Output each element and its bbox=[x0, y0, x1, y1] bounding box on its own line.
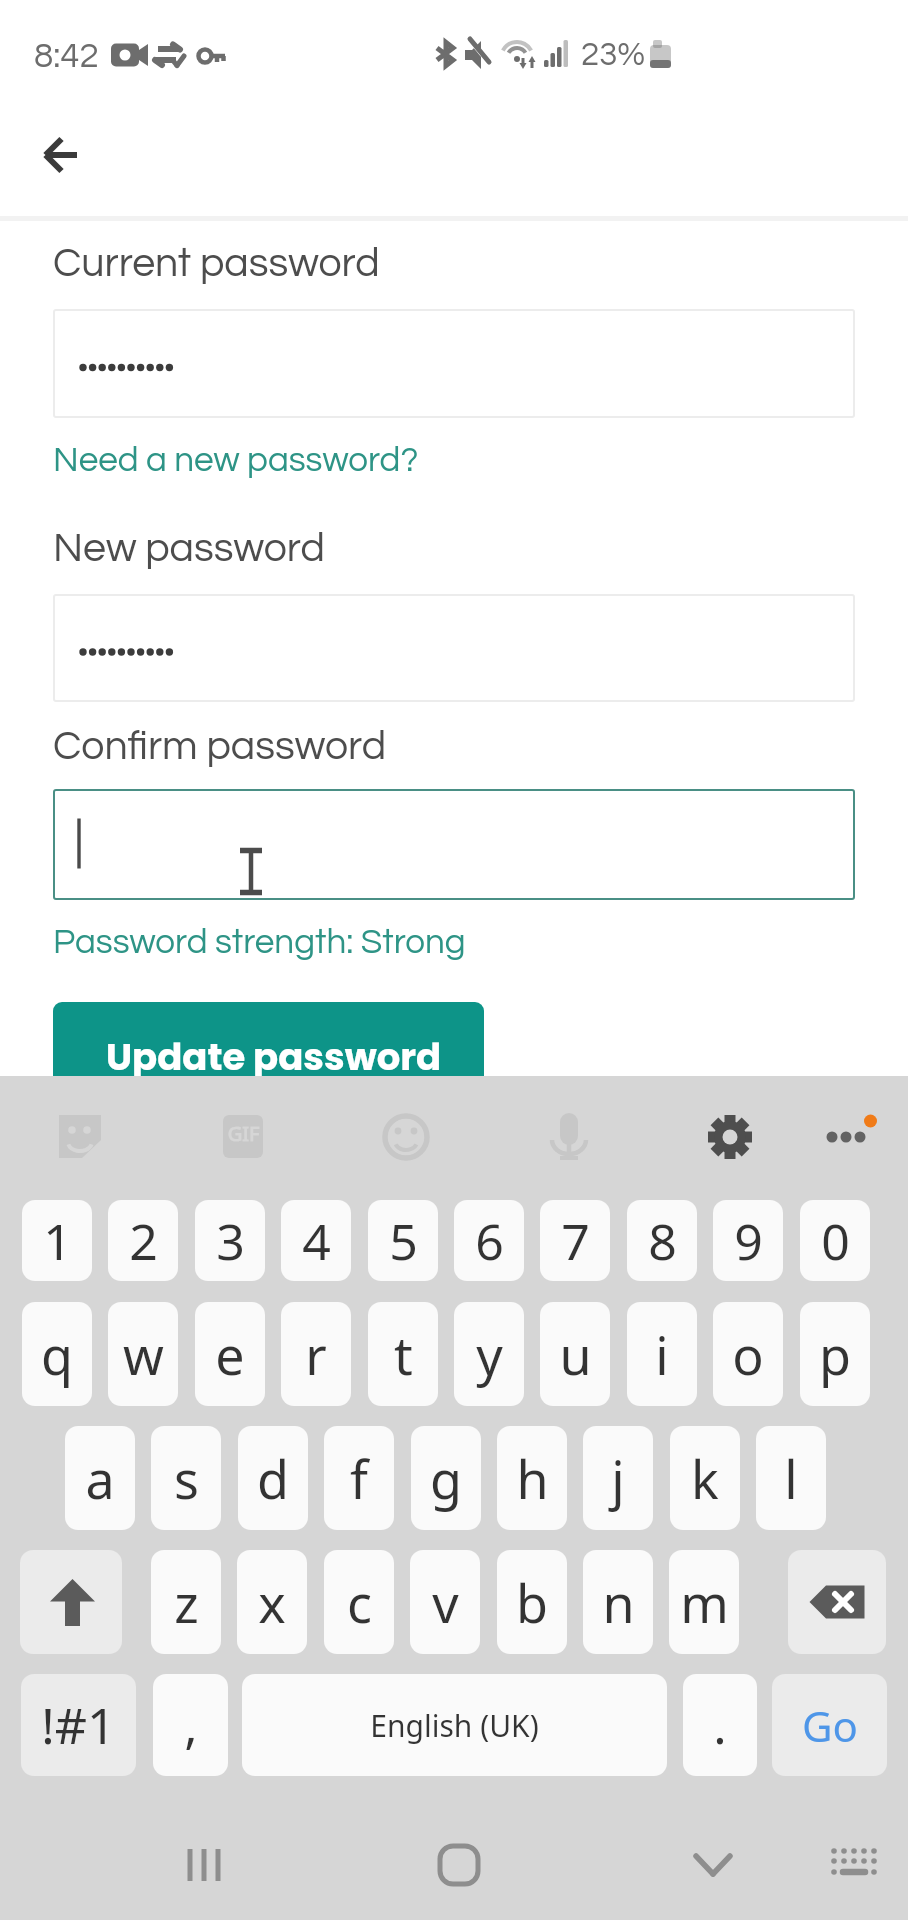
button[interactable]: 9 bbox=[713, 1200, 783, 1281]
staticText: w bbox=[123, 1319, 164, 1390]
button[interactable]: p bbox=[800, 1302, 870, 1406]
button[interactable]: a bbox=[65, 1426, 135, 1530]
button[interactable]: Hide keyboard bbox=[658, 1800, 768, 1920]
button[interactable]: Go bbox=[772, 1674, 887, 1776]
staticText: d bbox=[257, 1443, 289, 1514]
button[interactable]: w bbox=[108, 1302, 178, 1406]
button[interactable]: GIF bbox=[223, 1115, 264, 1159]
button[interactable]: n bbox=[583, 1550, 653, 1654]
staticText: b bbox=[516, 1567, 548, 1638]
staticText: k bbox=[691, 1443, 719, 1514]
button[interactable]: t bbox=[368, 1302, 438, 1406]
button[interactable]: 6 bbox=[454, 1200, 524, 1281]
staticText: c bbox=[347, 1567, 372, 1638]
button[interactable]: r bbox=[281, 1302, 351, 1406]
staticText: Password strength: Strong bbox=[53, 924, 466, 960]
staticText: t bbox=[394, 1319, 413, 1390]
button[interactable]: g bbox=[411, 1426, 481, 1530]
button[interactable]: y bbox=[454, 1302, 524, 1406]
staticText: f bbox=[350, 1443, 368, 1514]
staticText: g bbox=[430, 1443, 462, 1514]
button[interactable]: q bbox=[22, 1302, 92, 1406]
staticText: 9 bbox=[734, 1207, 763, 1275]
staticText: i bbox=[655, 1319, 669, 1390]
button[interactable]: z bbox=[151, 1550, 221, 1654]
button[interactable]: 3 bbox=[195, 1200, 265, 1281]
button[interactable]: 0 bbox=[800, 1200, 870, 1281]
staticText: 2 bbox=[129, 1207, 158, 1275]
staticText: . bbox=[713, 1691, 727, 1759]
staticText: Confirm password bbox=[53, 725, 387, 767]
button[interactable]: h bbox=[497, 1426, 567, 1530]
button[interactable]: m bbox=[669, 1550, 739, 1654]
button[interactable]: d bbox=[238, 1426, 308, 1530]
staticText: a bbox=[85, 1443, 115, 1514]
staticText: 3 bbox=[216, 1207, 245, 1275]
button[interactable]: Recents bbox=[149, 1800, 259, 1920]
button[interactable]: 2 bbox=[108, 1200, 178, 1281]
staticText: , bbox=[184, 1691, 198, 1759]
button[interactable]: Shift bbox=[20, 1550, 122, 1654]
button[interactable]: f bbox=[324, 1426, 394, 1530]
button[interactable]: Stickers bbox=[58, 1115, 102, 1159]
button[interactable]: 5 bbox=[368, 1200, 438, 1281]
button[interactable]: Change keyboard bbox=[799, 1800, 908, 1920]
staticText: Current password bbox=[53, 242, 380, 284]
button[interactable]: c bbox=[324, 1550, 394, 1654]
button[interactable]: English (UK) bbox=[242, 1674, 667, 1776]
staticText: English (UK) bbox=[370, 1705, 539, 1746]
button[interactable]: Keyboard settings bbox=[708, 1115, 752, 1159]
staticText: u bbox=[559, 1319, 592, 1390]
staticText: Go bbox=[802, 1697, 858, 1754]
button[interactable]: More options bbox=[826, 1115, 876, 1159]
staticText: r bbox=[305, 1319, 327, 1390]
button[interactable]: Home bbox=[404, 1800, 514, 1920]
staticText: x bbox=[258, 1567, 286, 1638]
staticText: 4 bbox=[302, 1207, 331, 1275]
button[interactable]: Back bbox=[20, 114, 102, 196]
button[interactable]: s bbox=[151, 1426, 221, 1530]
staticText: o bbox=[732, 1319, 764, 1390]
staticText: 6 bbox=[475, 1207, 504, 1275]
button[interactable]: . bbox=[683, 1674, 757, 1776]
button[interactable]: i bbox=[627, 1302, 697, 1406]
staticText: 0 bbox=[821, 1207, 850, 1275]
button[interactable]: l bbox=[756, 1426, 826, 1530]
staticText: h bbox=[516, 1443, 549, 1514]
staticText: p bbox=[819, 1319, 851, 1390]
button[interactable]: x bbox=[237, 1550, 307, 1654]
button[interactable]: 7 bbox=[540, 1200, 610, 1281]
button[interactable]: o bbox=[713, 1302, 783, 1406]
button[interactable]: Backspace bbox=[788, 1550, 886, 1654]
button[interactable]: , bbox=[153, 1674, 228, 1776]
button[interactable]: Voice input bbox=[550, 1113, 588, 1161]
button[interactable] bbox=[53, 594, 855, 702]
staticText: 1 bbox=[43, 1207, 72, 1275]
staticText: n bbox=[602, 1567, 635, 1638]
button[interactable]: v bbox=[410, 1550, 480, 1654]
button[interactable]: k bbox=[670, 1426, 740, 1530]
staticText: Update password bbox=[106, 1031, 442, 1083]
staticText: y bbox=[476, 1319, 503, 1390]
staticText: 5 bbox=[389, 1207, 418, 1275]
button[interactable]: Emoji bbox=[385, 1115, 428, 1159]
button[interactable] bbox=[53, 309, 855, 418]
button[interactable]: 4 bbox=[281, 1200, 351, 1281]
button[interactable]: Update password bbox=[53, 1002, 484, 1114]
button[interactable]: !#1 bbox=[21, 1674, 136, 1776]
button[interactable]: u bbox=[540, 1302, 610, 1406]
button[interactable]: b bbox=[497, 1550, 567, 1654]
staticText: j bbox=[611, 1443, 625, 1514]
staticText: !#1 bbox=[41, 1691, 116, 1759]
button[interactable]: e bbox=[195, 1302, 265, 1406]
staticText: e bbox=[215, 1319, 245, 1390]
staticText: s bbox=[174, 1443, 199, 1514]
button[interactable]: 1 bbox=[22, 1200, 92, 1281]
staticText: 23% bbox=[581, 38, 646, 72]
staticText: q bbox=[41, 1319, 73, 1390]
button[interactable] bbox=[53, 789, 855, 900]
staticText: m bbox=[680, 1567, 729, 1638]
button[interactable]: 8 bbox=[627, 1200, 697, 1281]
button[interactable]: j bbox=[583, 1426, 653, 1530]
